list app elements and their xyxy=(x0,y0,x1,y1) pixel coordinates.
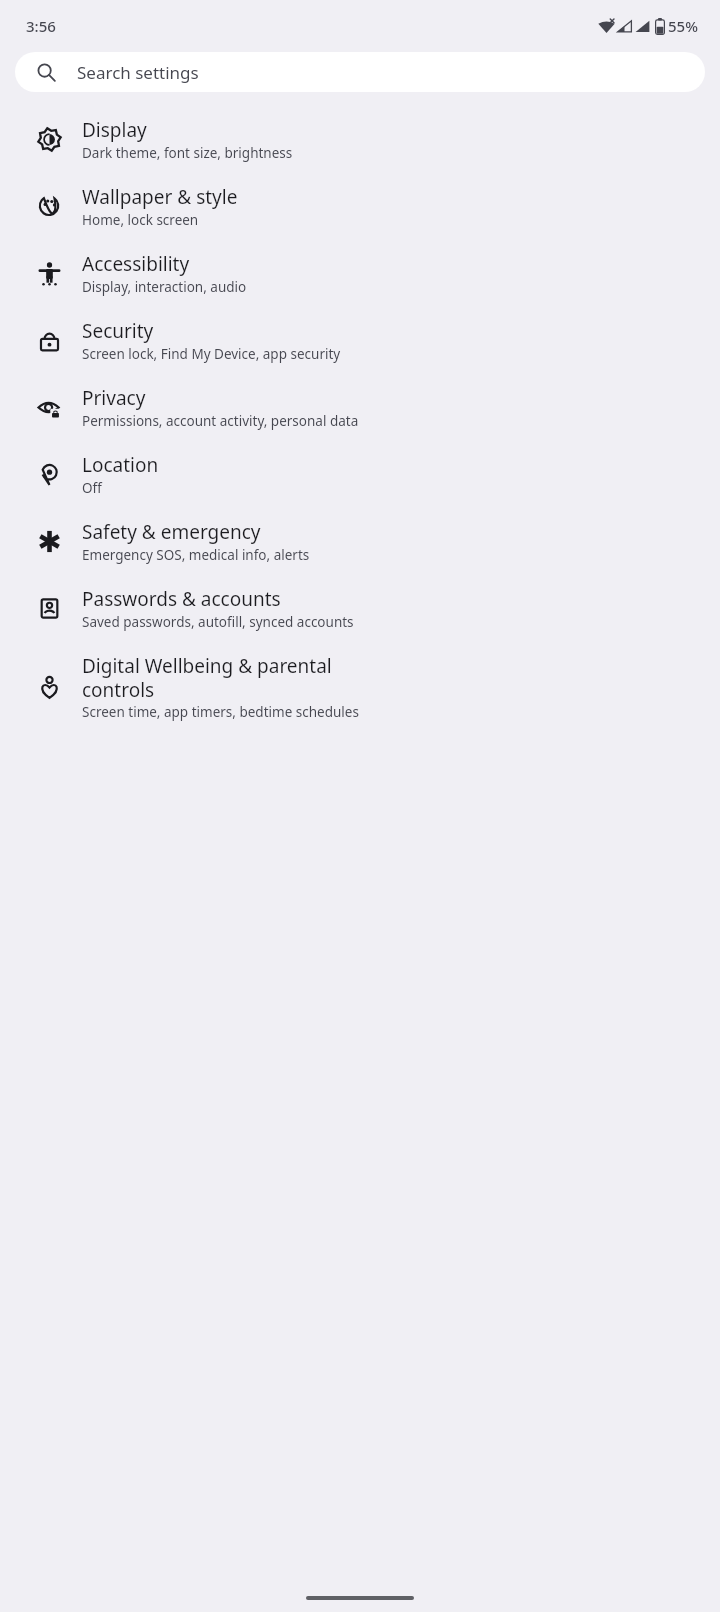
staticText: 3:56 xyxy=(26,16,56,36)
staticText: Emergency SOS, medical info, alerts xyxy=(82,546,310,564)
staticText: Digital Wellbeing & parental controls xyxy=(82,653,332,702)
button[interactable]: Security xyxy=(0,307,720,374)
staticText: Screen time, app timers, bedtime schedul… xyxy=(82,703,359,721)
staticText: Accessibility xyxy=(82,251,190,277)
staticText: Off xyxy=(82,479,102,497)
staticText: Display xyxy=(82,117,147,143)
staticText: Wallpaper & style xyxy=(82,184,238,210)
staticText: Location xyxy=(82,452,159,478)
staticText: Security xyxy=(82,318,154,344)
button[interactable]: Location xyxy=(0,441,720,508)
button[interactable]: Passwords & accounts xyxy=(0,575,720,642)
staticText: Safety & emergency xyxy=(82,519,261,545)
button[interactable]: Wallpaper & style xyxy=(0,173,720,240)
button[interactable]: Privacy xyxy=(0,374,720,441)
staticText: Screen lock, Find My Device, app securit… xyxy=(82,345,341,363)
staticText: Permissions, account activity, personal … xyxy=(82,412,359,430)
staticText: Search settings xyxy=(77,61,199,84)
staticText: Dark theme, font size, brightness xyxy=(82,144,293,162)
staticText: Passwords & accounts xyxy=(82,586,281,612)
staticText: Home, lock screen xyxy=(82,211,199,229)
button[interactable]: Digital Wellbeing & parental controls xyxy=(0,642,720,732)
button[interactable]: Display xyxy=(0,106,720,173)
button[interactable]: Accessibility xyxy=(0,240,720,307)
staticText: Saved passwords, autofill, synced accoun… xyxy=(82,613,354,631)
button[interactable]: Safety & emergency xyxy=(0,508,720,575)
staticText: 55% xyxy=(668,16,698,36)
staticText: Privacy xyxy=(82,385,146,411)
button[interactable]: Search settings xyxy=(15,52,705,92)
staticText: Display, interaction, audio xyxy=(82,278,247,296)
